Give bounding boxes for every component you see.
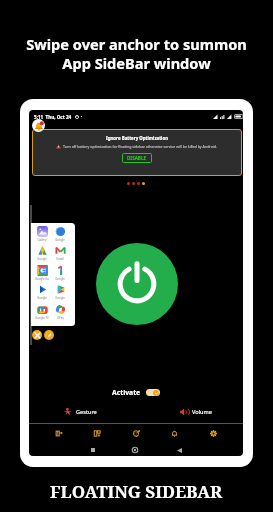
- staticText: 5:11 Thu, Oct 24: [34, 114, 72, 120]
- button[interactable]: Google Go: [32, 265, 52, 281]
- staticText: FLOATING SIDEBAR: [50, 480, 223, 503]
- button[interactable]: DISABLE: [122, 153, 152, 163]
- staticText: Google: [55, 277, 65, 281]
- button[interactable]: Google: [32, 284, 52, 300]
- staticText: Google: [37, 296, 47, 300]
- button[interactable]: Recents: [87, 444, 99, 456]
- button[interactable]: Settings: [205, 425, 222, 442]
- button[interactable]: Google: [50, 265, 70, 281]
- button[interactable]: Close sidebar: [32, 330, 42, 340]
- button[interactable]: Notifications: [166, 425, 183, 442]
- button[interactable]: Power toggle: [96, 243, 178, 325]
- button[interactable]: Gesture: [64, 408, 97, 416]
- button[interactable]: Google TV: [32, 304, 52, 320]
- button[interactable]: Google: [50, 284, 70, 300]
- button[interactable]: Edit sidebar: [44, 330, 54, 340]
- staticText: Google: [37, 257, 47, 261]
- staticText: Google: [55, 296, 65, 300]
- button[interactable]: Ignore Battery Optimization: [32, 129, 242, 176]
- button[interactable]: Activate: [112, 388, 160, 397]
- button[interactable]: Sidebar: [51, 425, 68, 442]
- button[interactable]: Home: [129, 444, 141, 456]
- staticText: Google TV: [35, 316, 49, 320]
- staticText: Volume: [192, 408, 212, 416]
- button[interactable]: Volume: [180, 408, 212, 416]
- staticText: Gmail: [56, 257, 64, 261]
- button[interactable]: GPay: [50, 304, 70, 320]
- staticText: Google Go: [35, 277, 49, 281]
- staticText: Gesture: [76, 408, 97, 416]
- staticText: GPay: [57, 316, 64, 320]
- staticText: Ignore Battery Optimization: [106, 135, 168, 141]
- button[interactable]: Back: [173, 444, 185, 456]
- staticText: DISABLE: [127, 155, 147, 161]
- button[interactable]: Apps: [89, 425, 106, 442]
- staticText: Turn off battery optimization for floati…: [63, 144, 218, 149]
- button[interactable]: Google: [50, 226, 70, 242]
- button[interactable]: Gmail: [50, 245, 70, 261]
- button[interactable]: Shortcuts: [128, 425, 145, 442]
- staticText: Google: [55, 238, 65, 242]
- button[interactable]: Google: [32, 245, 52, 261]
- staticText: Activate: [112, 388, 141, 397]
- staticText: Gallery: [37, 238, 47, 242]
- button[interactable]: Gallery: [32, 226, 52, 242]
- staticText: Swipe over anchor to summon App SideBar …: [26, 34, 247, 74]
